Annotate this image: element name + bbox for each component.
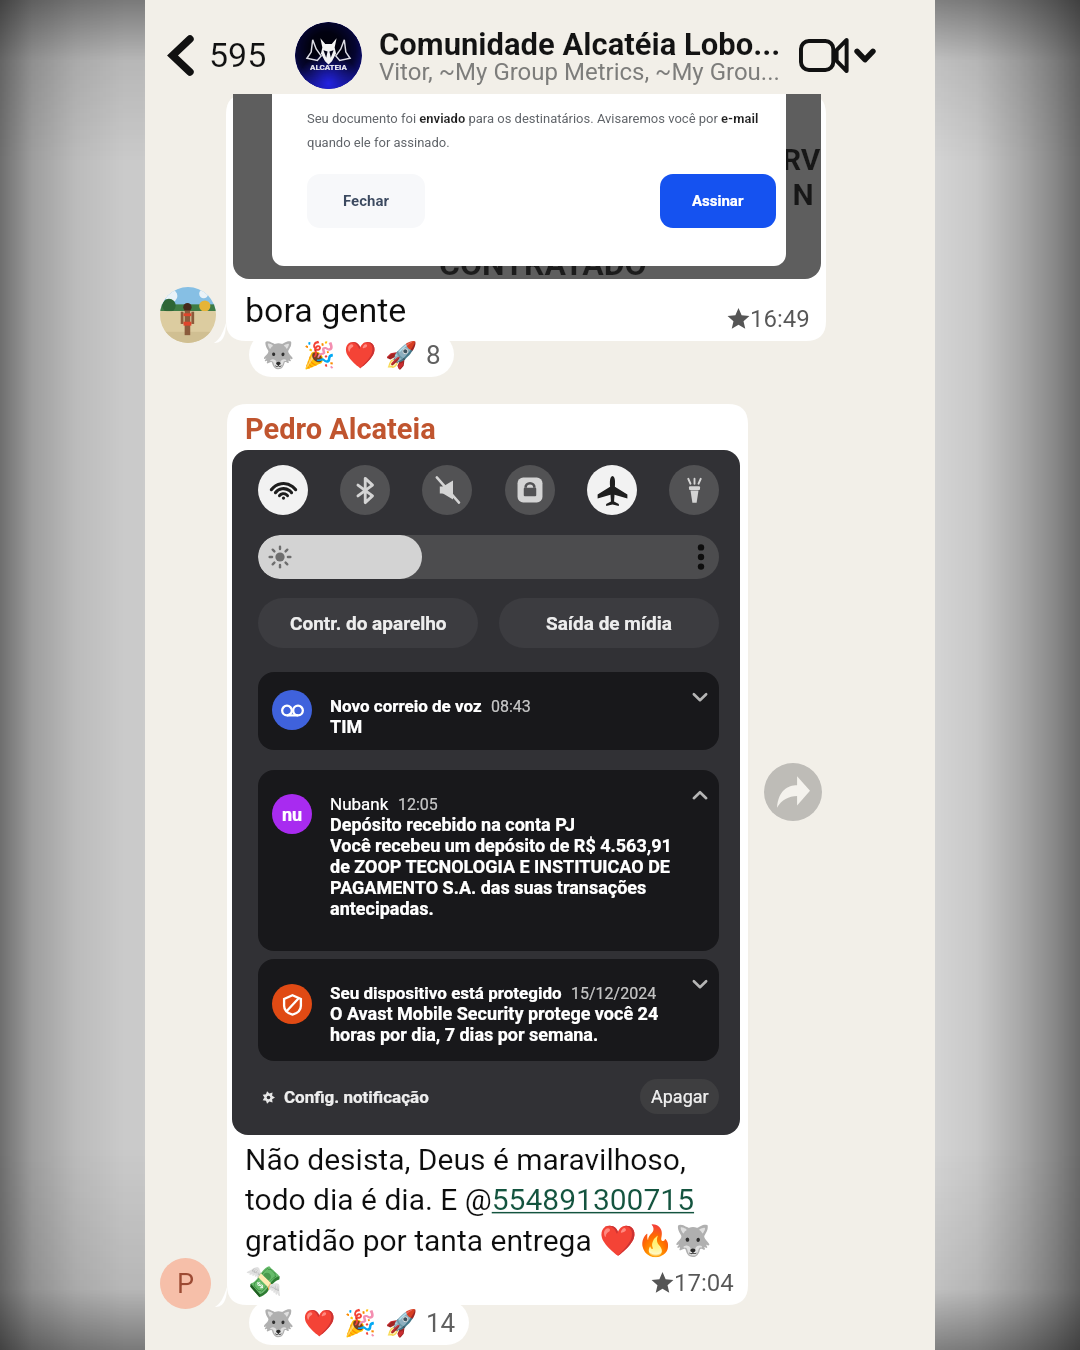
staticText: 14: [426, 1308, 456, 1338]
staticText: 08:43: [491, 697, 531, 716]
staticText: nu: [282, 804, 303, 825]
button[interactable]: Brightness: [258, 535, 719, 579]
staticText: 8: [426, 340, 441, 370]
staticText: de ZOOP TECNOLOGIA E INSTITUICAO DE: [330, 856, 670, 877]
button[interactable]: Airplane mode: [587, 465, 637, 515]
staticText: Depósito recebido na conta PJ: [330, 814, 576, 835]
staticText: Nubank: [330, 794, 389, 814]
button[interactable]: Novo correio de voz: [258, 672, 719, 750]
staticText: 🎉: [344, 1308, 377, 1338]
staticText: ALCATEIA: [310, 63, 347, 72]
button[interactable]: 🐺: [249, 1300, 469, 1345]
button[interactable]: Sender profile photo: [160, 287, 216, 343]
staticText: ❤️: [303, 1308, 336, 1338]
staticText: bora gente: [245, 290, 407, 330]
staticText: Vitor, ~My Group Metrics, ~My Grou...: [379, 58, 780, 86]
button[interactable]: Flashlight: [669, 465, 719, 515]
button[interactable]: ERV: [214, 94, 826, 341]
staticText: Não desista, Deus é maravilhoso, todo di…: [245, 1142, 734, 1300]
button[interactable]: Wi-Fi: [258, 465, 308, 515]
staticText: Fechar: [343, 192, 389, 210]
staticText: Apagar: [651, 1086, 709, 1107]
button[interactable]: Apagar: [640, 1079, 719, 1114]
button[interactable]: 🐺: [249, 332, 454, 377]
button[interactable]: nu: [258, 770, 719, 951]
button[interactable]: Group profile photo: [295, 22, 362, 89]
staticText: 15/12/2024: [571, 984, 657, 1003]
staticText: Pedro Alcateia: [245, 412, 436, 446]
button[interactable]: Auto rotate lock: [505, 465, 555, 515]
button[interactable]: Bluetooth: [340, 465, 390, 515]
staticText: A N: [765, 177, 814, 212]
staticText: 🎉: [303, 340, 336, 370]
staticText: Contr. do aparelho: [290, 612, 447, 634]
button[interactable]: Video call: [791, 20, 888, 73]
staticText: Assinar: [692, 192, 744, 210]
button[interactable]: Pedro Alcateia: [215, 404, 748, 1305]
button[interactable]: Forward: [764, 763, 822, 821]
staticText: Seu dispositivo está protegido: [330, 983, 562, 1003]
staticText: 16:49: [750, 305, 810, 333]
staticText: PAGAMENTO S.A. das suas transações: [330, 877, 647, 898]
staticText: 🐺: [262, 340, 295, 370]
staticText: 🐺: [262, 1308, 295, 1338]
button[interactable]: Saída de mídia: [499, 598, 719, 648]
staticText: ERV: [765, 142, 821, 177]
staticText: Config. notificação: [284, 1087, 429, 1107]
staticText: 595: [209, 35, 267, 75]
staticText: TIM: [330, 716, 363, 737]
staticText: horas por dia, 7 dias por semana.: [330, 1024, 599, 1045]
staticText: ❤️: [344, 340, 377, 370]
staticText: Novo correio de voz: [330, 696, 482, 716]
staticText: Comunidade Alcatéia Lobo...: [379, 26, 781, 62]
button[interactable]: Contr. do aparelho: [258, 598, 478, 648]
staticText: antecipadas.: [330, 898, 434, 919]
staticText: 🚀: [385, 340, 418, 370]
button[interactable]: Mute: [422, 465, 472, 515]
button[interactable]: Seu dispositivo está protegido: [258, 959, 719, 1061]
staticText: Seu documento foi enviado para os destin…: [307, 111, 776, 150]
staticText: Você recebeu um depósito de R$ 4.563,91: [330, 835, 672, 856]
staticText: 17:04: [674, 1269, 734, 1297]
staticText: 12:05: [398, 795, 438, 814]
staticText: O Avast Mobile Security protege você 24: [330, 1003, 659, 1024]
staticText: P: [177, 1268, 195, 1300]
button[interactable]: Assinar: [660, 174, 776, 228]
button[interactable]: Fechar: [307, 174, 425, 228]
staticText: Saída de mídia: [546, 612, 672, 634]
staticText: 🚀: [385, 1308, 418, 1338]
staticText: CONTRATADO: [439, 245, 647, 279]
button[interactable]: Config. notificação: [258, 1085, 429, 1109]
button[interactable]: Pedro Alcateia profile: [160, 1258, 211, 1309]
button[interactable]: Back: [164, 16, 273, 76]
